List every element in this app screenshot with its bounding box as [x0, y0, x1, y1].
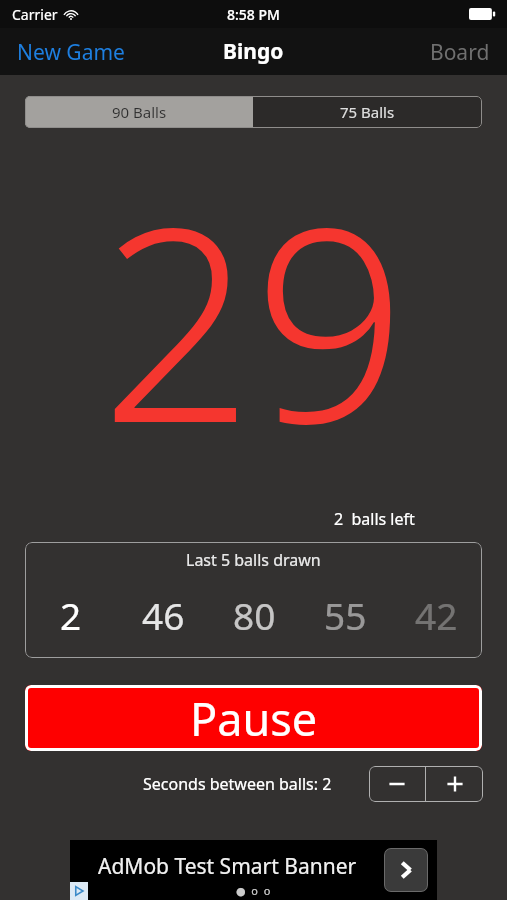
button[interactable]: Pause [25, 685, 482, 751]
staticText: New Game [17, 38, 125, 65]
staticText: Seconds between balls: 2 [143, 773, 332, 795]
button[interactable]: AdMob Test Smart Banner [70, 840, 437, 900]
button[interactable]: New Game [0, 28, 142, 75]
staticText: 2 balls left [334, 508, 415, 530]
button[interactable]: Board [413, 28, 507, 75]
staticText: 75 Balls [340, 102, 395, 122]
staticText: Bingo [223, 37, 284, 66]
button[interactable]: Decrease seconds [369, 766, 425, 802]
staticText: Pause [190, 688, 318, 749]
staticText: ● o o [236, 883, 271, 898]
staticText: 8:58 PM [227, 5, 280, 24]
staticText: 29 [100, 136, 407, 501]
button[interactable]: Open ad [384, 848, 428, 892]
staticText: Last 5 balls drawn [186, 549, 321, 571]
button[interactable]: Increase seconds [426, 766, 483, 802]
staticText: AdMob Test Smart Banner [98, 852, 357, 881]
staticText: Carrier [12, 5, 58, 24]
staticText: 55 [324, 590, 367, 640]
staticText: 46 [142, 590, 185, 640]
staticText: Board [430, 38, 490, 65]
staticText: 90 Balls [112, 102, 167, 122]
button[interactable]: 75 Balls [253, 96, 482, 128]
staticText: 80 [233, 590, 276, 640]
staticText: 2 [60, 590, 82, 640]
staticText: 42 [415, 590, 458, 640]
button[interactable]: 90 Balls [25, 96, 253, 128]
